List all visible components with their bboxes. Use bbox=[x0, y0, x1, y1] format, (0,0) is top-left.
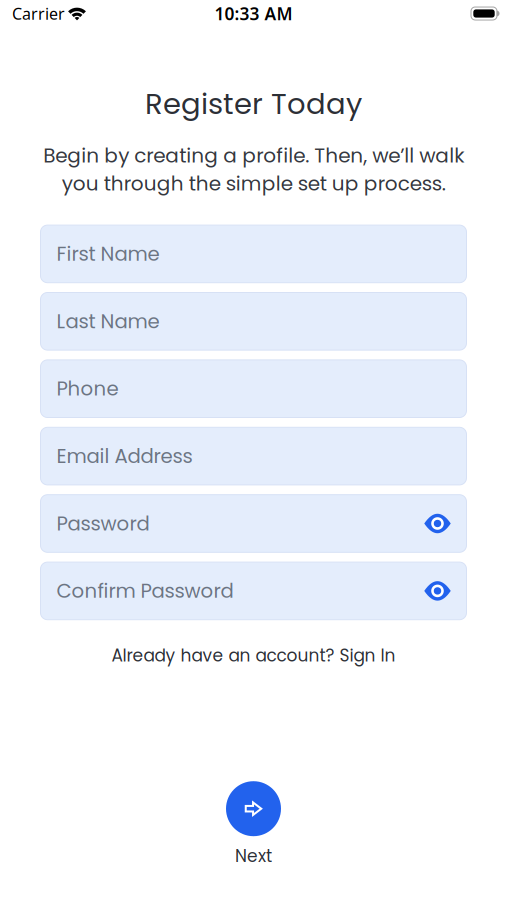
button[interactable]: Next bbox=[226, 781, 281, 868]
button[interactable]: Confirm Password bbox=[40, 562, 466, 620]
staticText: 10:33 AM bbox=[214, 2, 292, 25]
staticText: Next bbox=[235, 844, 272, 868]
staticText: Last Name bbox=[56, 307, 159, 335]
staticText: Begin by creating a profile. Then, we’ll… bbox=[43, 142, 464, 198]
button[interactable]: Password bbox=[40, 495, 466, 552]
staticText: Register Today bbox=[145, 83, 362, 124]
staticText: Email Address bbox=[56, 442, 192, 470]
staticText: Phone bbox=[56, 375, 118, 402]
button[interactable]: Email Address bbox=[40, 427, 466, 485]
staticText: First Name bbox=[56, 240, 159, 268]
button[interactable]: Show password bbox=[423, 512, 451, 534]
button[interactable]: Phone bbox=[40, 360, 466, 417]
staticText: Password bbox=[56, 510, 149, 537]
button[interactable]: Last Name bbox=[40, 292, 466, 350]
staticText: Confirm Password bbox=[56, 577, 233, 605]
staticText: Carrier bbox=[12, 3, 65, 24]
staticText: Already have an account? Sign In bbox=[111, 644, 395, 667]
button[interactable]: Show password bbox=[423, 580, 451, 602]
button[interactable]: First Name bbox=[40, 225, 466, 283]
button[interactable]: Already have an account? Sign In bbox=[111, 644, 395, 667]
